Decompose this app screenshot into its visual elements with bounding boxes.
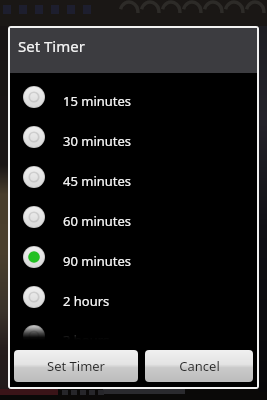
staticText: Set Timer [47, 357, 105, 375]
button[interactable]: 45 minutes [10, 156, 257, 196]
staticText: Set Timer [18, 36, 85, 56]
button[interactable]: 15 minutes [10, 76, 257, 116]
staticText: 2 hours [63, 292, 110, 310]
staticText: 45 minutes [63, 172, 132, 190]
staticText: 60 minutes [63, 212, 132, 230]
button[interactable]: 30 minutes [10, 116, 257, 156]
staticText: 30 minutes [63, 132, 132, 150]
button[interactable]: 60 minutes [10, 196, 257, 236]
staticText: 90 minutes [63, 252, 132, 270]
staticText: 15 minutes [63, 92, 132, 110]
button[interactable]: Cancel [145, 350, 253, 382]
button[interactable]: 90 minutes [10, 236, 257, 276]
staticText: Cancel [179, 357, 220, 375]
button[interactable]: 3 hours [10, 316, 257, 353]
button[interactable]: Set Timer [14, 350, 138, 382]
button[interactable]: 2 hours [10, 276, 257, 316]
